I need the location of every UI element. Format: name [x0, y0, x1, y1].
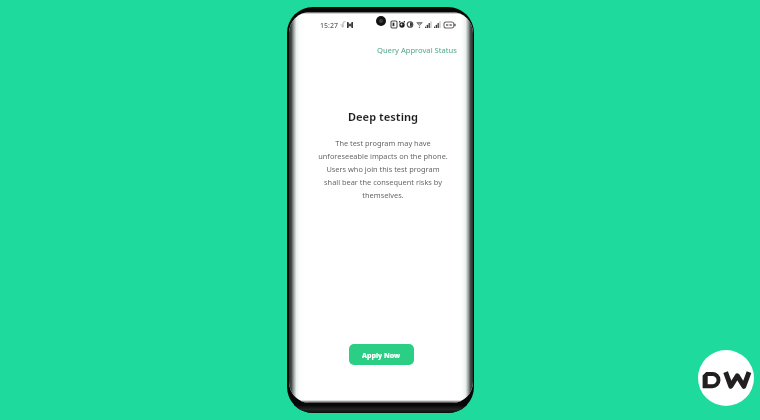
- staticText: Apply Now: [362, 350, 401, 360]
- staticText: The test program may have unforeseeable …: [318, 138, 448, 200]
- button[interactable]: DW logo: [698, 350, 754, 406]
- button[interactable]: Query Approval Status: [374, 42, 460, 58]
- staticText: Query Approval Status: [377, 45, 457, 55]
- staticText: 15:27: [320, 21, 338, 31]
- staticText: Deep testing: [348, 109, 419, 124]
- button[interactable]: Apply Now: [349, 344, 414, 365]
